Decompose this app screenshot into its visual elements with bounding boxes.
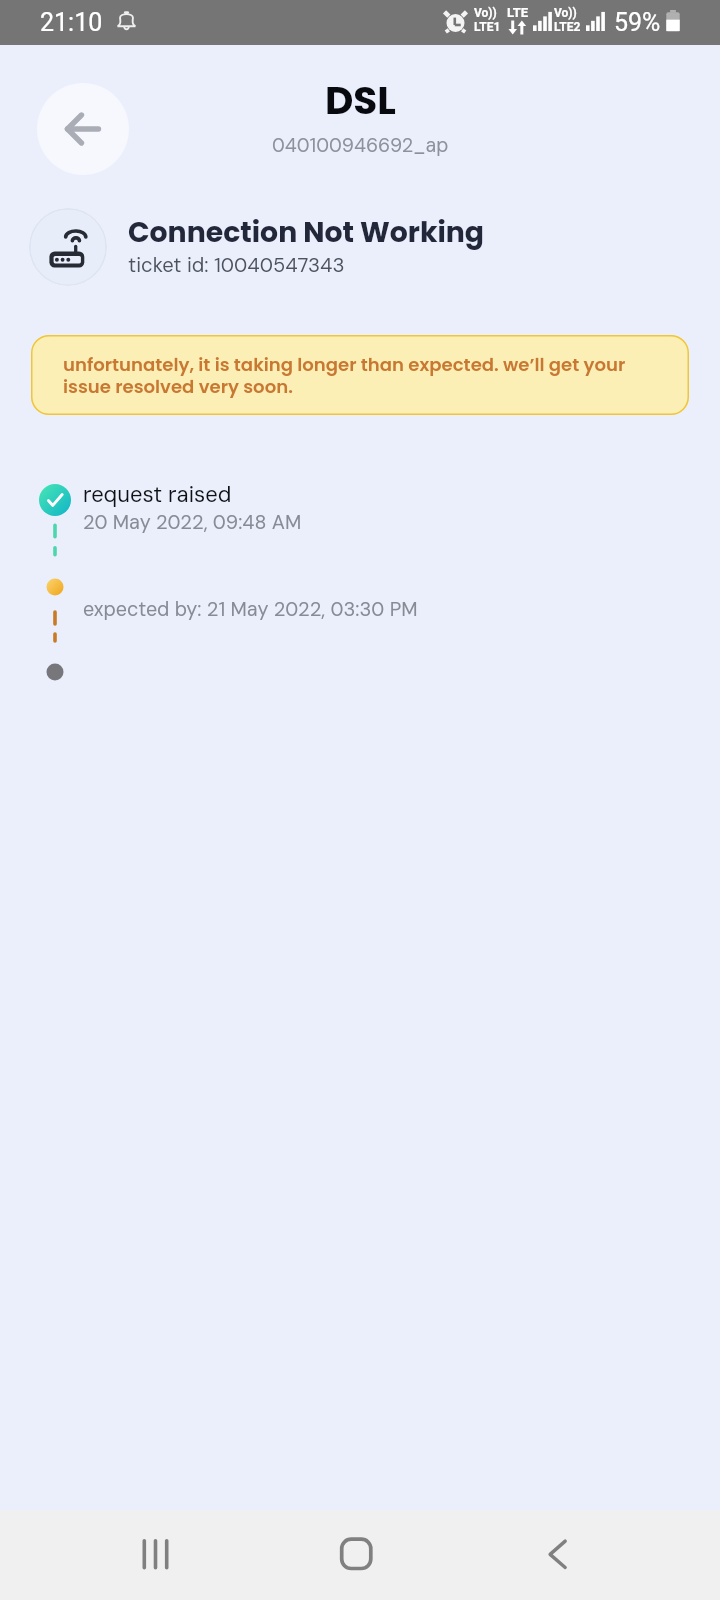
staticText: Vo)) xyxy=(554,6,577,20)
staticText: request raised xyxy=(83,480,232,509)
staticText: 59% xyxy=(614,8,661,37)
staticText: 040100946692_ap xyxy=(272,133,449,158)
button[interactable]: unfortunately, it is taking longer than … xyxy=(31,335,689,415)
button[interactable]: Home xyxy=(316,1520,396,1600)
staticText: LTE2 xyxy=(554,20,581,34)
button[interactable]: Back xyxy=(518,1520,598,1600)
staticText: DSL xyxy=(325,73,396,128)
staticText: unfortunately, it is taking longer than … xyxy=(63,352,663,399)
staticText: 20 May 2022, 09:48 AM xyxy=(83,509,302,535)
staticText: expected by: 21 May 2022, 03:30 PM xyxy=(83,596,418,622)
staticText: ticket id: 10040547343 xyxy=(128,252,345,278)
button[interactable]: Back xyxy=(37,83,129,175)
staticText: Vo)) xyxy=(474,6,497,20)
button[interactable]: Recent apps xyxy=(115,1520,195,1600)
staticText: LTE1 xyxy=(474,20,501,34)
staticText: Connection Not Working xyxy=(128,212,485,252)
staticText: LTE xyxy=(507,5,529,20)
staticText: 21:10 xyxy=(40,8,103,37)
